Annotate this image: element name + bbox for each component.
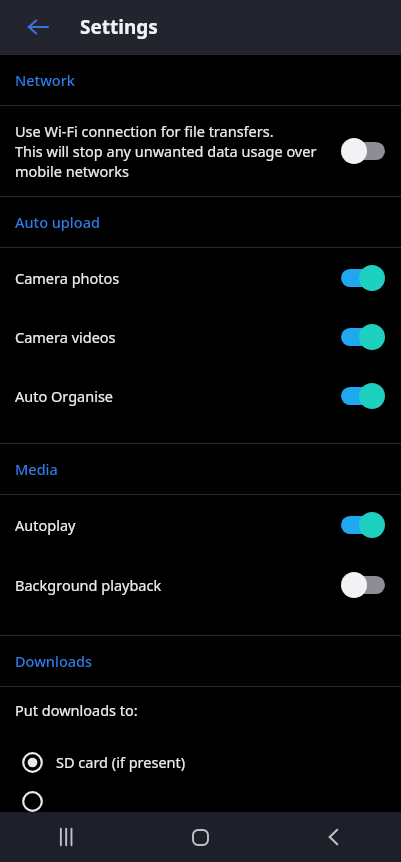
staticText: Auto Organise <box>15 386 114 406</box>
button[interactable]: Background playback <box>0 555 401 615</box>
button[interactable]: Auto Organise <box>0 366 401 425</box>
button[interactable]: SD card (if present) <box>0 733 401 791</box>
staticText: SD card (if present) <box>56 752 186 772</box>
staticText: Network <box>15 70 75 90</box>
button[interactable]: Back <box>14 3 62 51</box>
button[interactable]: Autoplay <box>0 495 401 555</box>
button[interactable] <box>0 791 401 812</box>
staticText: Background playback <box>15 575 162 595</box>
button[interactable]: Back <box>306 812 362 862</box>
staticText: Settings <box>80 14 158 40</box>
staticText: Use Wi-Fi connection for file transfers. <box>15 121 274 141</box>
staticText: This will stop any unwanted data usage o… <box>15 141 317 161</box>
staticText: Camera photos <box>15 268 120 288</box>
button[interactable]: Recents <box>39 812 95 862</box>
staticText: Put downloads to: <box>15 700 138 720</box>
staticText: mobile networks <box>15 161 129 181</box>
staticText: Auto upload <box>15 212 100 232</box>
button[interactable]: Use Wi-Fi connection for file transfers. <box>0 106 401 196</box>
button[interactable]: Home <box>172 812 228 862</box>
button[interactable]: Camera videos <box>0 307 401 366</box>
button[interactable]: Camera photos <box>0 248 401 307</box>
staticText: Downloads <box>15 651 93 671</box>
staticText: Camera videos <box>15 327 116 347</box>
staticText: Media <box>15 459 58 479</box>
staticText: Autoplay <box>15 515 76 535</box>
